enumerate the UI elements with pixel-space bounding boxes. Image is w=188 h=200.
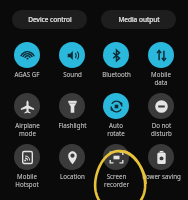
staticText: Power saving	[142, 172, 181, 180]
button[interactable]: Airplane mode	[5, 92, 49, 137]
staticText: Location	[60, 172, 85, 180]
button[interactable]: Media output	[101, 10, 176, 29]
staticText: Media output	[118, 15, 160, 24]
staticText: Flashlight	[58, 121, 87, 129]
button[interactable]: Screen recorder	[94, 143, 138, 188]
button[interactable]: Sound	[50, 41, 94, 78]
staticText: Do not disturb	[151, 121, 172, 137]
staticText: Mobile Hotspot	[15, 172, 39, 188]
button[interactable]: Mobile Hotspot	[5, 143, 49, 188]
staticText: Mobile data	[151, 70, 171, 86]
button[interactable]: Auto rotate	[94, 92, 138, 137]
staticText: Device control	[28, 15, 72, 24]
staticText: Sound	[63, 70, 82, 78]
staticText: Airplane mode	[15, 121, 40, 137]
staticText: Auto rotate	[107, 121, 125, 137]
staticText: AGAS GF	[14, 70, 40, 78]
button[interactable]: Do not disturb	[139, 92, 183, 137]
button[interactable]: Device control	[12, 10, 87, 29]
button[interactable]: Power saving	[139, 143, 183, 180]
button[interactable]: Location	[50, 143, 94, 180]
button[interactable]: Mobile data	[139, 41, 183, 86]
button[interactable]: AGAS GF	[5, 41, 49, 78]
button[interactable]: Bluetooth	[94, 41, 138, 78]
staticText: Bluetooth	[102, 70, 131, 78]
staticText: Screen recorder	[104, 172, 129, 188]
button[interactable]: Flashlight	[50, 92, 94, 129]
